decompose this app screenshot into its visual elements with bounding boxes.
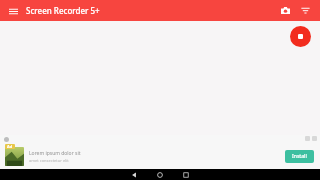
staticText: Install	[292, 153, 307, 160]
button[interactable]: Home	[150, 169, 170, 180]
button[interactable]: Take screenshot	[277, 2, 294, 19]
button[interactable]: Ad	[0, 144, 320, 169]
button[interactable]: Stop recording	[290, 26, 311, 47]
button[interactable]: Recent apps	[176, 169, 196, 180]
button[interactable]: Open navigation drawer	[5, 3, 21, 19]
button[interactable]: Back	[124, 169, 144, 180]
staticText: Lorem ipsum dolor sit	[29, 150, 81, 157]
staticText: Ad	[7, 144, 13, 149]
button[interactable]: Filter	[297, 2, 314, 19]
staticText: Screen Recorder 5+	[26, 5, 100, 16]
staticText: amet consectetur elit	[29, 158, 69, 163]
button[interactable]: Install	[285, 150, 314, 163]
